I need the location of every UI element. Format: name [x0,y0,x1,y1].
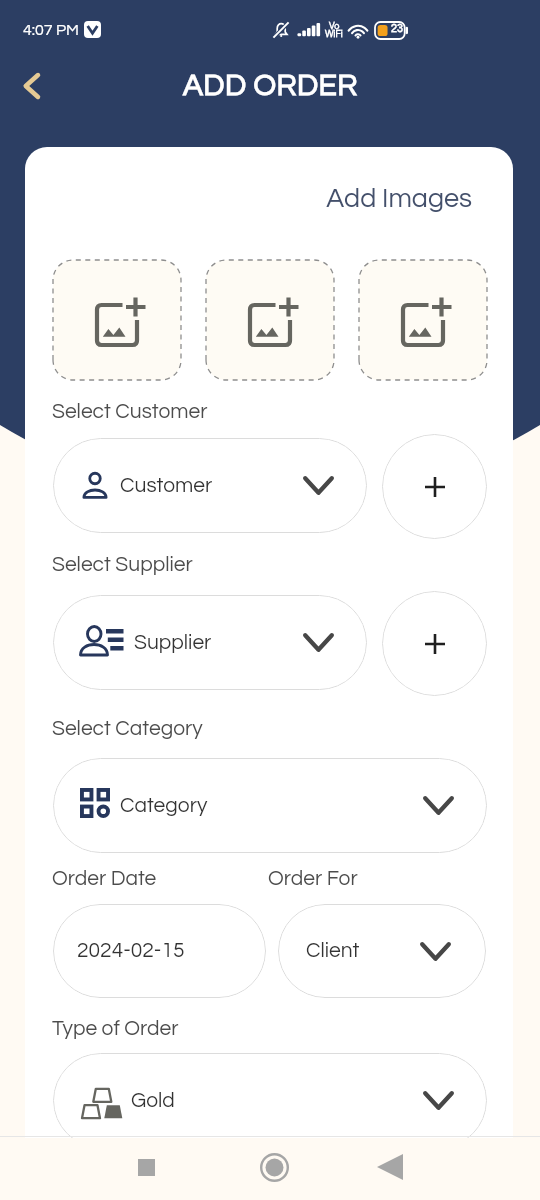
button[interactable]: Client [278,904,486,998]
staticText: Order For [268,868,358,890]
button[interactable]: 2024-02-15 [53,904,266,998]
staticText: Select Category [52,718,203,740]
staticText: Customer [120,475,213,497]
staticText: Client [306,940,360,962]
button[interactable]: Add [382,434,487,539]
button[interactable]: Supplier [53,595,367,690]
button[interactable]: Home [250,1143,298,1191]
staticText: ADD ORDER [183,70,358,101]
button[interactable]: Add image [359,260,487,380]
staticText: Order Date [52,868,157,890]
button[interactable]: Add image [206,260,334,380]
button[interactable]: Recents [122,1143,170,1191]
staticText: WiFi [325,30,343,39]
staticText: Supplier [134,632,212,654]
staticText: 2024-02-15 [77,940,185,962]
staticText: 4:07 PM [23,22,80,38]
staticText: 23 [391,23,404,34]
button[interactable]: Back [366,1143,414,1191]
staticText: Select Customer [52,401,208,423]
staticText: Gold [131,1090,175,1112]
button[interactable]: Add image [53,260,181,380]
button[interactable]: Back [8,62,56,110]
staticText: Select Supplier [52,554,193,576]
button[interactable]: Add [382,591,487,696]
button[interactable]: Gold [53,1053,487,1138]
staticText: Type of Order [52,1018,179,1040]
staticText: Vo [329,22,340,31]
staticText: Category [120,795,208,817]
button[interactable]: Customer [53,438,367,533]
button[interactable]: Category [53,758,487,853]
staticText: Add Images [25,185,472,213]
